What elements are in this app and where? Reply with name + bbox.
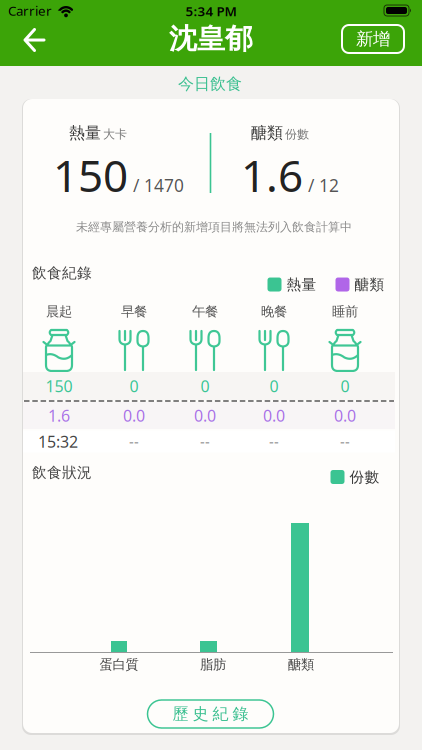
staticText: 晨起: [46, 303, 72, 320]
staticText: --: [269, 432, 279, 451]
staticText: 醣類: [251, 123, 283, 143]
staticText: 份數: [285, 127, 309, 142]
button[interactable]: 歷史紀錄: [147, 700, 273, 728]
staticText: 0.0: [334, 405, 356, 426]
staticText: 早餐: [121, 303, 147, 320]
staticText: 飲食狀況: [32, 463, 92, 481]
staticText: 1.6: [48, 405, 70, 426]
staticText: 新增: [356, 28, 390, 50]
staticText: 未經專屬營養分析的新增項目將無法列入飲食計算中: [76, 220, 352, 234]
staticText: --: [129, 432, 139, 451]
staticText: 大卡: [103, 127, 127, 142]
staticText: 0: [340, 375, 349, 397]
staticText: 0: [129, 375, 138, 397]
staticText: 醣類: [288, 656, 314, 673]
staticText: 15:32: [38, 431, 78, 452]
staticText: 份數: [349, 468, 379, 486]
staticText: 0.0: [263, 405, 285, 426]
staticText: 睡前: [332, 303, 358, 320]
staticText: 5:34 PM: [185, 2, 236, 20]
staticText: 熱量: [69, 123, 101, 143]
staticText: 150: [45, 375, 72, 397]
staticText: 午餐: [192, 303, 218, 320]
button[interactable]: Back: [13, 18, 57, 62]
staticText: 飲食紀錄: [32, 264, 92, 282]
staticText: 歷史紀錄: [172, 704, 248, 724]
staticText: / 1470: [133, 174, 184, 197]
staticText: 蛋白質: [99, 656, 138, 673]
staticText: 晚餐: [261, 303, 287, 320]
staticText: 熱量: [286, 275, 316, 293]
staticText: 1.6: [241, 146, 303, 204]
staticText: 0: [200, 375, 209, 397]
staticText: 脂肪: [200, 656, 226, 673]
staticText: Carrier: [8, 2, 52, 19]
button[interactable]: 新增: [342, 25, 404, 53]
staticText: 醣類: [354, 275, 384, 293]
staticText: --: [200, 432, 210, 451]
staticText: --: [340, 432, 350, 451]
staticText: / 12: [308, 174, 339, 197]
staticText: 150: [53, 146, 128, 204]
staticText: 0.0: [123, 405, 145, 426]
staticText: 0.0: [194, 405, 216, 426]
staticText: 今日飲食: [178, 74, 242, 94]
staticText: 沈皇郁: [169, 22, 253, 56]
staticText: 0: [269, 375, 278, 397]
